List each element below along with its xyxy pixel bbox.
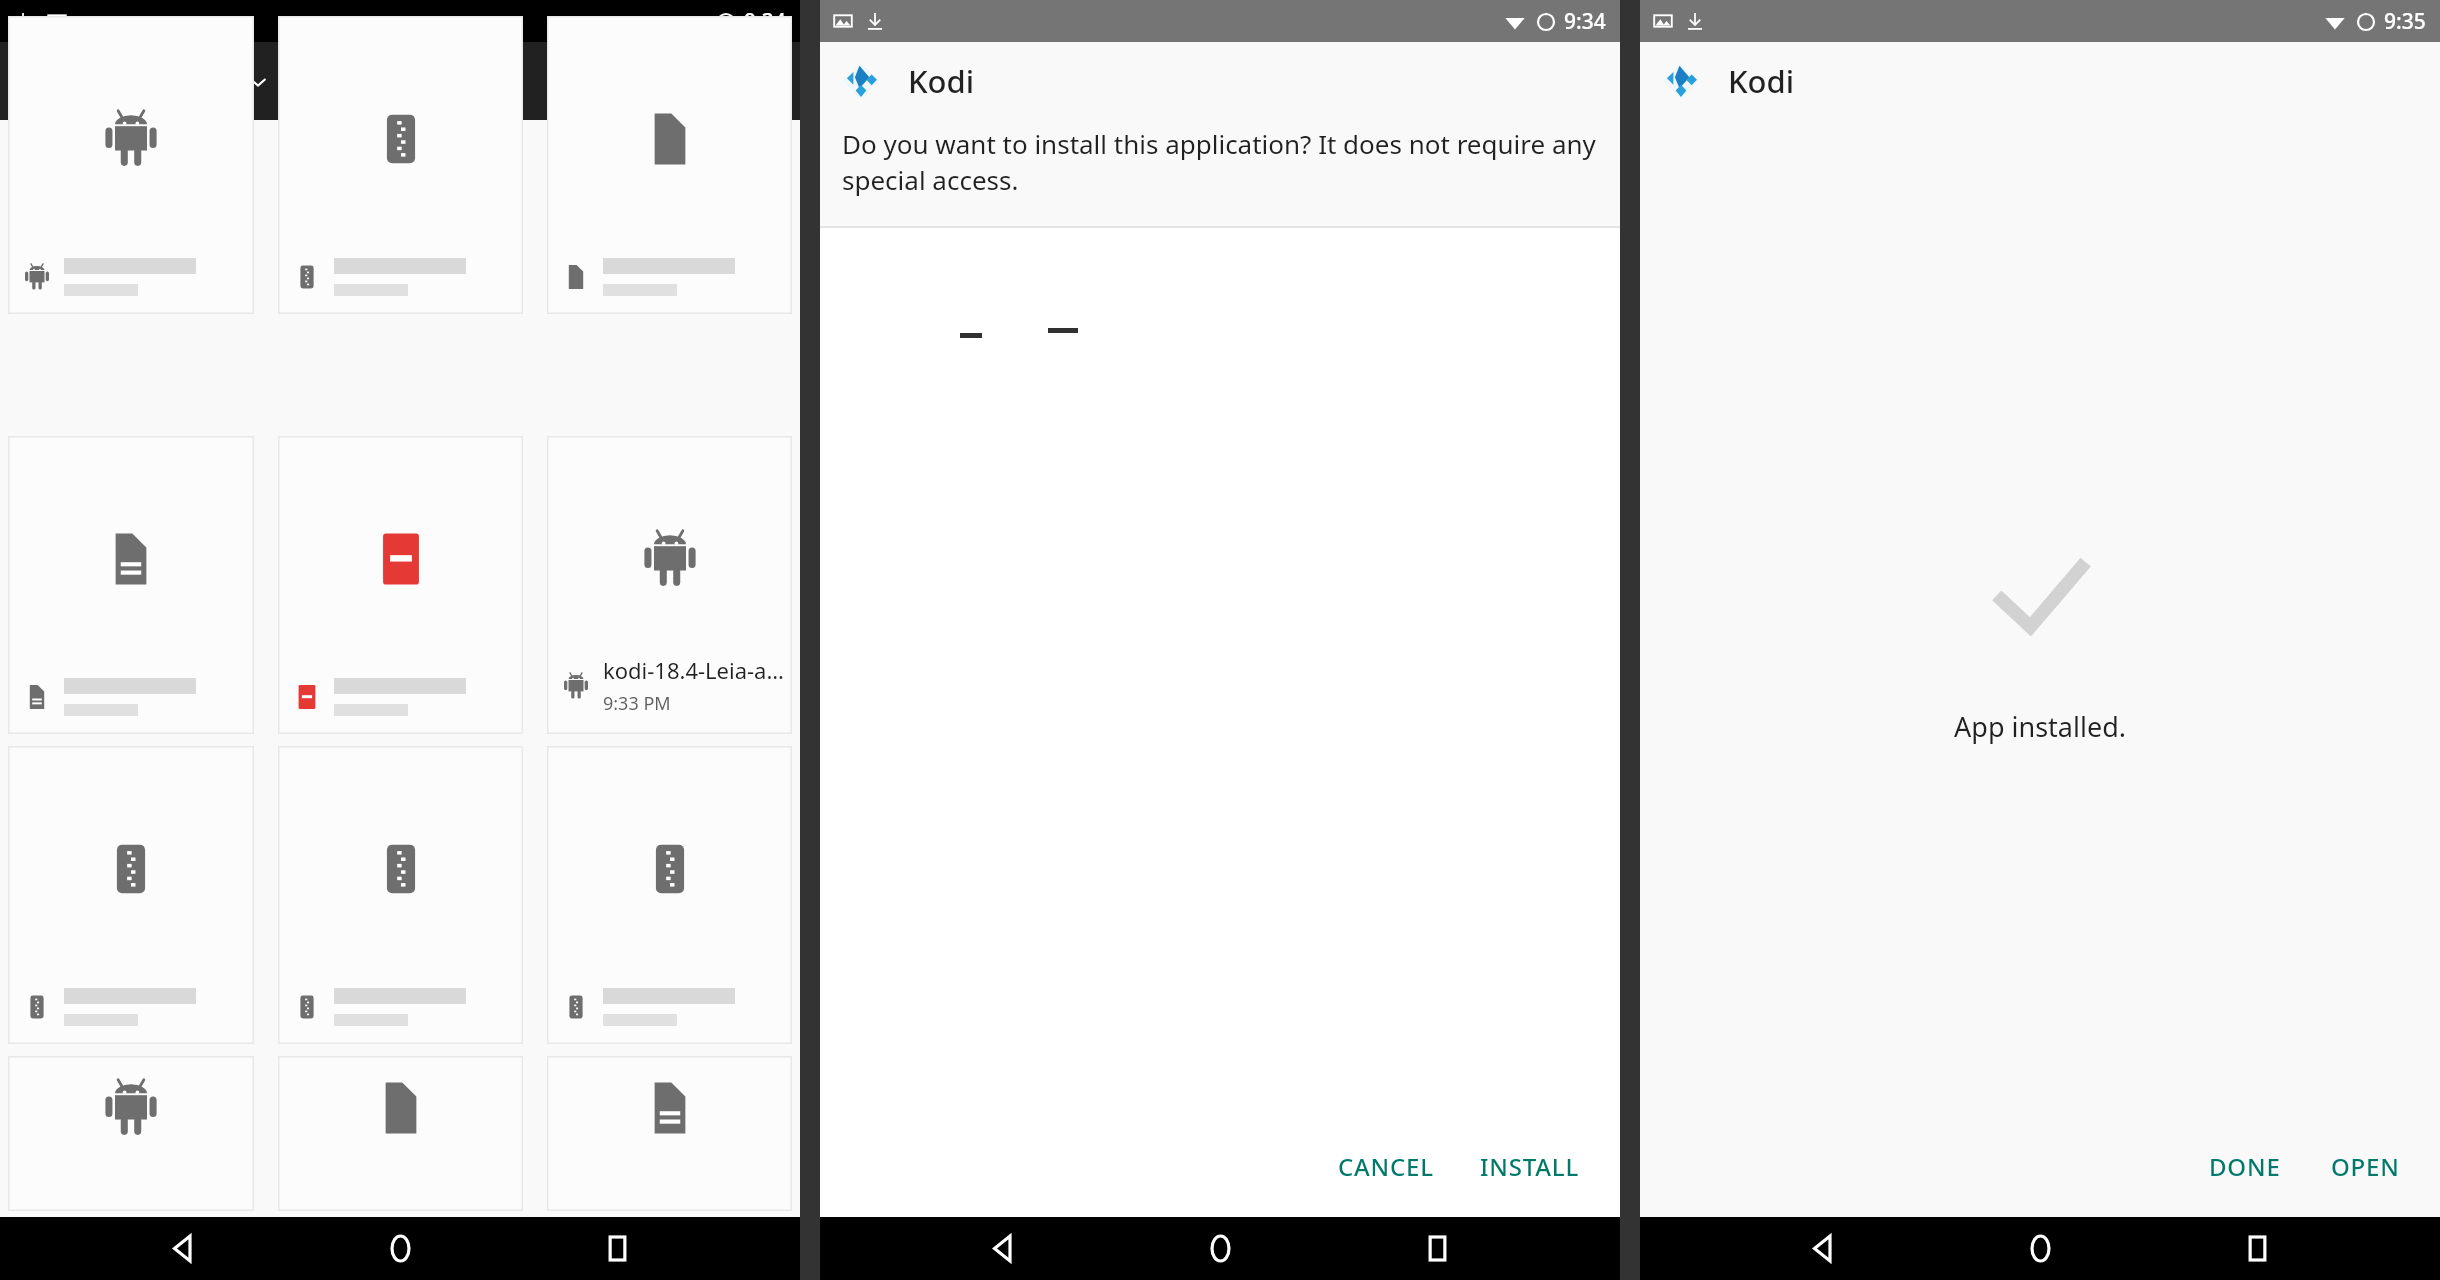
button[interactable]: Back xyxy=(1791,1217,1857,1280)
staticText: Do you want to install this application?… xyxy=(842,126,1598,198)
button[interactable]: Home xyxy=(1187,1217,1253,1280)
button[interactable] xyxy=(547,746,792,1044)
staticText: OPEN xyxy=(2331,1150,2400,1183)
staticText: 9:35 xyxy=(2384,7,2426,36)
button[interactable] xyxy=(8,436,254,734)
button[interactable] xyxy=(278,436,523,734)
button[interactable]: Download xyxy=(86,61,269,102)
button[interactable]: Back xyxy=(151,1217,217,1280)
staticText: INSTALL xyxy=(1480,1150,1580,1183)
button[interactable]: Home xyxy=(367,1217,433,1280)
button[interactable]: CANCEL xyxy=(1320,1138,1452,1195)
button[interactable]: Recent apps xyxy=(1404,1217,1470,1280)
button[interactable] xyxy=(278,746,523,1044)
button[interactable] xyxy=(8,16,254,314)
button[interactable] xyxy=(8,1056,254,1211)
button[interactable]: Recent apps xyxy=(584,1217,650,1280)
staticText: kodi-18.4-Leia-a… xyxy=(603,655,784,685)
staticText: App installed. xyxy=(1954,708,2126,745)
staticText: Kodi xyxy=(908,60,975,102)
button[interactable] xyxy=(8,746,254,1044)
staticText: Kodi xyxy=(1728,60,1795,102)
staticText: 9:34 xyxy=(1564,7,1606,36)
staticText: 9:34 xyxy=(744,7,786,36)
button[interactable]: Home xyxy=(2007,1217,2073,1280)
button[interactable]: kodi-18.4-Leia-a… xyxy=(547,436,792,734)
button[interactable]: INSTALL xyxy=(1462,1138,1598,1195)
button[interactable] xyxy=(547,1056,792,1211)
button[interactable]: Back xyxy=(971,1217,1037,1280)
button[interactable]: Recent apps xyxy=(2224,1217,2290,1280)
staticText: DONE xyxy=(2209,1150,2281,1183)
staticText: 9:33 PM xyxy=(603,691,671,716)
button[interactable] xyxy=(278,1056,523,1211)
button[interactable]: DONE xyxy=(2191,1138,2299,1195)
button[interactable] xyxy=(547,16,792,314)
staticText: CANCEL xyxy=(1338,1150,1434,1183)
button[interactable]: OPEN xyxy=(2313,1138,2418,1195)
button[interactable] xyxy=(278,16,523,314)
